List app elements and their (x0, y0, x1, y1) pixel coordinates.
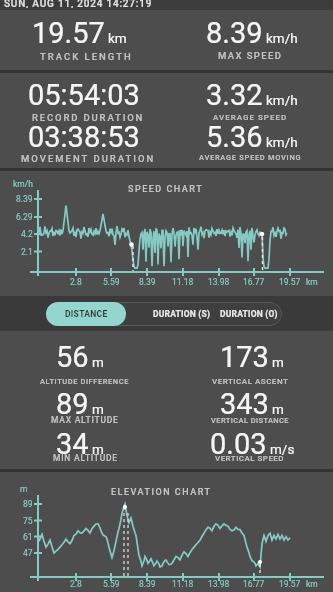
staticText: VERTICAL ASCENT (212, 377, 289, 386)
staticText: 13.98 (208, 579, 230, 589)
staticText: TRACK LENGTH (40, 51, 133, 62)
staticText: 5.36 (206, 120, 263, 154)
staticText: 3.32 (206, 78, 263, 112)
staticText: DISTANCE (65, 309, 108, 319)
staticText: 5.59 (103, 277, 120, 287)
staticText: 11.18 (172, 277, 194, 287)
staticText: MAX ALTITUDE (51, 415, 119, 425)
staticText: 03:38:53 (28, 120, 140, 154)
staticText: 343 (220, 387, 269, 421)
staticText: km/h (266, 30, 298, 46)
staticText: km/h (13, 179, 33, 189)
staticText: 8.39 (16, 194, 33, 204)
staticText: 6.29 (16, 212, 33, 222)
staticText: m (272, 354, 284, 370)
staticText: 19.57 (279, 579, 301, 589)
staticText: 0.03 (210, 427, 267, 461)
staticText: AVERAGE SPEED (213, 113, 288, 122)
staticText: m (272, 401, 284, 417)
staticText: 2.8 (70, 579, 82, 589)
staticText: ELEVATION CHART (111, 487, 212, 498)
staticText: 05:54:03 (28, 78, 140, 112)
staticText: 19.57 (32, 16, 105, 50)
staticText: km (306, 579, 318, 589)
staticText: 89 (56, 387, 89, 421)
staticText: 5.59 (103, 579, 120, 589)
staticText: m (20, 484, 28, 494)
staticText: 89 (23, 499, 33, 509)
staticText: 8.39 (206, 16, 263, 50)
staticText: SPEED CHART (128, 184, 204, 195)
staticText: 16.77 (243, 277, 265, 287)
staticText: 4.2 (21, 229, 33, 239)
staticText: MIN ALTITUDE (53, 453, 118, 463)
staticText: 16.77 (243, 579, 265, 589)
staticText: km/h (266, 92, 298, 108)
staticText: 8.39 (139, 579, 156, 589)
staticText: SUN, AUG 11, 2024 14:27:19 (4, 0, 153, 8)
staticText: 13.98 (208, 277, 230, 287)
staticText: 173 (220, 340, 269, 374)
staticText: 2.1 (21, 247, 33, 257)
staticText: 19.57 (279, 277, 301, 287)
button[interactable]: DURATION (O) (218, 302, 280, 326)
staticText: DURATION (S) (153, 309, 211, 319)
staticText: DURATION (O) (220, 309, 278, 319)
staticText: 2.8 (70, 277, 82, 287)
staticText: MOVEMENT DURATION (21, 153, 156, 164)
staticText: 61 (23, 532, 33, 542)
staticText: 75 (23, 516, 33, 526)
staticText: km/h (266, 134, 298, 150)
staticText: 8.39 (139, 277, 156, 287)
staticText: m (92, 441, 104, 457)
staticText: VERTICAL DISTANCE (211, 416, 290, 425)
button[interactable]: DISTANCE (46, 302, 126, 326)
staticText: 56 (56, 340, 89, 374)
staticText: VERTICAL SPEED (215, 454, 285, 463)
button[interactable]: DURATION (S) (136, 302, 228, 326)
staticText: 11.18 (172, 579, 194, 589)
staticText: MAX SPEED (218, 50, 283, 61)
staticText: m/s (270, 441, 295, 457)
staticText: 34 (56, 427, 89, 461)
staticText: m (92, 401, 104, 417)
staticText: 47 (23, 548, 33, 558)
staticText: AVERAGE SPEED MOVING (199, 153, 302, 162)
staticText: km (108, 30, 127, 46)
staticText: km (306, 277, 318, 287)
staticText: ALTITUDE DIFFERENCE (40, 377, 130, 386)
staticText: m (92, 354, 104, 370)
staticText: RECORD DURATION (32, 112, 145, 123)
